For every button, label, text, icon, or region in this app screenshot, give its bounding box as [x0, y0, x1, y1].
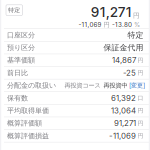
staticText: 基準価額 — [7, 56, 35, 65]
staticText: 口座区分 — [7, 31, 35, 39]
staticText: 口 — [137, 94, 143, 102]
staticText: 91,271 — [91, 4, 132, 20]
staticText: 14,867 — [112, 55, 136, 65]
button[interactable]: 概算評価額 — [0, 117, 150, 130]
staticText: 預り区分 — [7, 43, 35, 52]
staticText: 円 — [133, 11, 140, 20]
staticText: 円 — [137, 57, 143, 64]
staticText: 91,271 — [114, 118, 136, 128]
button[interactable]: 概算評価損益 — [0, 130, 150, 142]
staticText: 円 — [137, 132, 143, 140]
staticText: 再投資コース — [64, 82, 100, 89]
button[interactable]: 基準価額 — [0, 54, 150, 67]
staticText: 円 — [137, 107, 143, 114]
staticText: 平均取得単価 — [7, 106, 49, 115]
staticText: -11,069 — [109, 131, 136, 141]
staticText: 概算評価額 — [7, 119, 42, 128]
staticText: 保証金代用 — [103, 43, 143, 53]
staticText: 円 — [101, 21, 109, 29]
staticText: 円 — [137, 69, 143, 77]
staticText: 61,392 — [111, 93, 136, 103]
staticText: 特定 — [8, 6, 20, 14]
staticText: -25 — [123, 68, 136, 78]
button[interactable]: 預り区分 — [0, 42, 150, 54]
button[interactable]: 口座区分 — [0, 29, 150, 42]
staticText: 13,064 — [111, 106, 136, 115]
button[interactable]: 特定 — [6, 0, 22, 15]
staticText: 再投資中 — [103, 82, 127, 89]
button[interactable]: 保有数 — [0, 92, 150, 105]
staticText: 円 — [137, 120, 143, 127]
staticText: % — [132, 21, 140, 28]
staticText: 分配金の取扱い — [7, 81, 56, 90]
button[interactable]: 前日比 — [0, 67, 150, 79]
button[interactable]: 平均取得単価 — [0, 105, 150, 117]
staticText: 特定 — [127, 30, 143, 40]
staticText: 保有数 — [7, 94, 28, 102]
staticText: -13.80 — [112, 21, 132, 28]
staticText: 概算評価損益 — [7, 131, 49, 140]
staticText: 前日比 — [7, 68, 28, 77]
button[interactable]: 分配金の取扱い — [0, 79, 150, 92]
staticText: [変更] — [129, 82, 145, 89]
staticText: -11,069 — [78, 21, 101, 28]
